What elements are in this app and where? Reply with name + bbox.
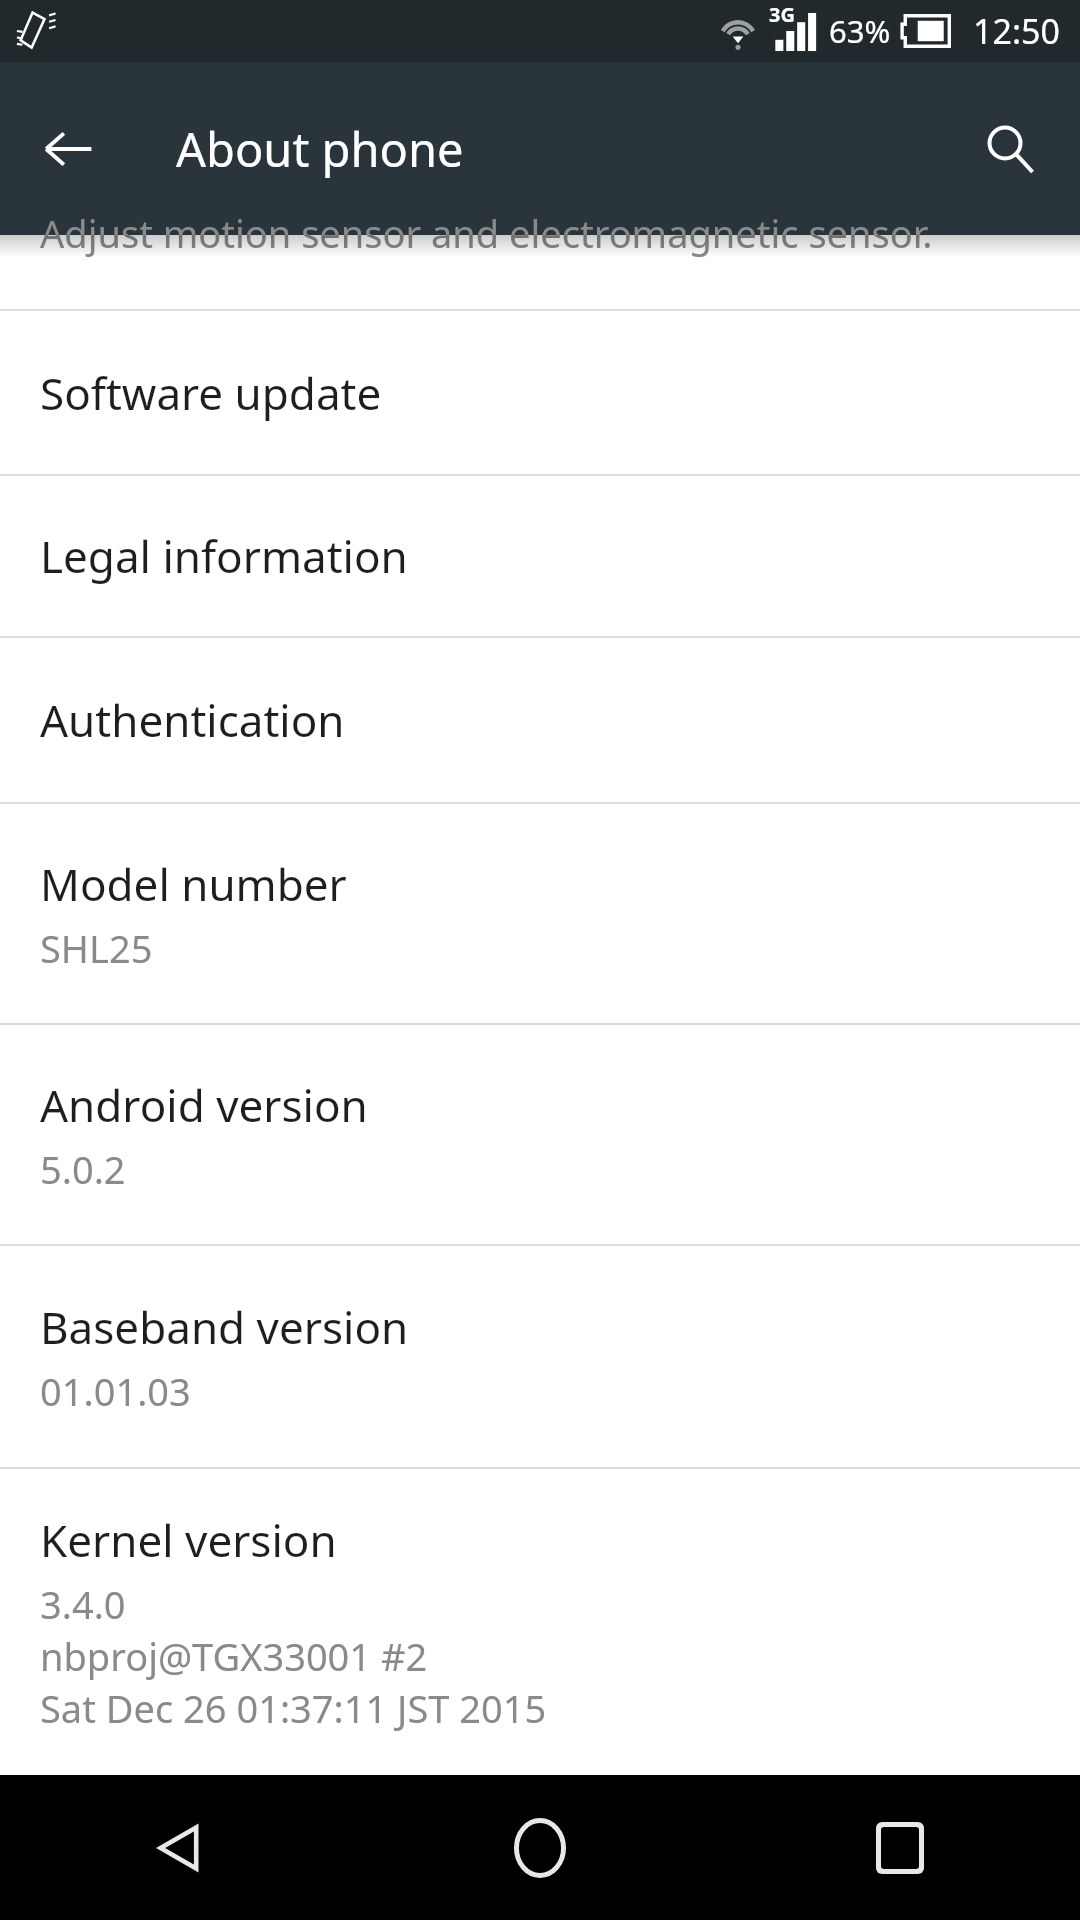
staticText: 12:50 [973, 8, 1060, 54]
staticText: 3G [769, 1, 795, 28]
staticText: 3.4.0 [40, 1578, 126, 1630]
staticText: 63% [829, 10, 891, 52]
button[interactable]: Home [360, 1775, 720, 1920]
button[interactable]: Back [20, 101, 116, 197]
staticText: Kernel version [40, 1510, 337, 1570]
button[interactable]: Kernel version [0, 1469, 1080, 1775]
staticText: Baseband version [40, 1297, 409, 1357]
button[interactable]: Android version [0, 1025, 1080, 1244]
staticText: About phone [176, 117, 464, 181]
button[interactable]: Baseband version [0, 1246, 1080, 1467]
staticText: Android version [40, 1075, 368, 1135]
staticText: Model number [40, 854, 347, 914]
staticText: nbproj@TGX33001 #2 [40, 1630, 428, 1682]
staticText: SHL25 [40, 922, 153, 974]
button[interactable]: Model number [0, 804, 1080, 1023]
staticText: 5.0.2 [40, 1143, 126, 1195]
staticText: Sat Dec 26 01:37:11 JST 2015 [40, 1682, 547, 1734]
staticText: 01.01.03 [40, 1365, 191, 1417]
button[interactable]: Search [962, 101, 1058, 197]
button[interactable]: Legal information [0, 476, 1080, 636]
button[interactable]: Software update [0, 311, 1080, 474]
button[interactable]: Back [0, 1775, 360, 1920]
staticText: Adjust motion sensor and electromagnetic… [40, 207, 933, 259]
button[interactable]: Authentication [0, 638, 1080, 802]
staticText: Software update [40, 363, 382, 423]
staticText: Legal information [40, 526, 408, 586]
button[interactable]: Recent apps [720, 1775, 1080, 1920]
staticText: Authentication [40, 690, 345, 750]
